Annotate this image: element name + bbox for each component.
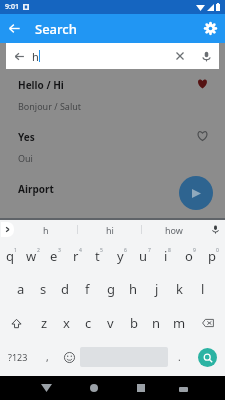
staticText: Oui — [18, 152, 33, 164]
staticText: e — [50, 247, 58, 265]
staticText: Bonjour / Salut — [18, 100, 82, 112]
button[interactable]: ?123 — [0, 340, 36, 374]
staticText: Yes — [18, 130, 35, 144]
staticText: . — [178, 350, 181, 364]
staticText: 5 — [100, 247, 103, 254]
button[interactable]: p — [202, 239, 225, 272]
staticText: Hello / Hi — [18, 78, 64, 92]
button[interactable]: o — [179, 239, 202, 272]
button[interactable]: Search — [198, 348, 217, 367]
staticText: 4 — [79, 247, 82, 254]
button[interactable]: Add favourite — [195, 128, 209, 142]
button[interactable]: Backspace — [191, 306, 225, 340]
button[interactable]: Back — [0, 14, 29, 43]
button[interactable]: x — [55, 306, 77, 340]
button[interactable]: z — [33, 306, 55, 340]
staticText: how — [165, 224, 183, 236]
button[interactable]: , — [36, 340, 58, 374]
staticText: 9 — [193, 247, 196, 254]
button[interactable]: Airport — [8, 175, 217, 203]
button[interactable]: Close search — [6, 43, 32, 69]
button[interactable]: a — [10, 272, 32, 306]
staticText: 6 — [124, 247, 127, 254]
staticText: h — [129, 280, 138, 298]
staticText: s — [40, 280, 47, 298]
button[interactable]: j — [145, 272, 168, 306]
staticText: k — [176, 280, 183, 298]
button[interactable]: Home — [70, 376, 117, 400]
button[interactable]: w — [22, 239, 44, 272]
staticText: ?123 — [8, 351, 28, 363]
button[interactable]: hi — [78, 220, 141, 239]
button[interactable]: b — [122, 306, 145, 340]
staticText: f — [85, 280, 90, 298]
button[interactable]: d — [54, 272, 76, 306]
staticText: , — [46, 350, 49, 364]
staticText: 7 — [148, 247, 151, 254]
button[interactable]: Expand suggestions — [1, 222, 14, 237]
staticText: t — [95, 247, 100, 265]
staticText: 0 — [216, 247, 219, 254]
staticText: a — [17, 280, 25, 298]
staticText: 3 — [58, 247, 61, 254]
button[interactable]: Back — [23, 376, 70, 400]
staticText: b — [130, 314, 138, 332]
button[interactable]: how — [142, 220, 205, 239]
staticText: 8 — [168, 247, 171, 254]
button[interactable]: c — [77, 306, 99, 340]
button[interactable]: Voice search — [193, 43, 219, 69]
staticText: 9:01 — [5, 2, 19, 12]
button[interactable]: Hello / Hi — [8, 71, 217, 119]
staticText: q — [6, 247, 14, 265]
button[interactable]: Close search — [6, 43, 219, 69]
staticText: n — [152, 314, 161, 332]
staticText: z — [41, 314, 48, 332]
staticText: c — [85, 314, 92, 332]
button[interactable]: l — [191, 272, 214, 306]
button[interactable]: s — [32, 272, 54, 306]
button[interactable]: Play — [179, 176, 213, 210]
button[interactable]: m — [168, 306, 191, 340]
staticText: i — [164, 247, 168, 265]
button[interactable]: n — [145, 306, 168, 340]
button[interactable]: Voice input — [205, 220, 225, 239]
staticText: 1 — [14, 247, 17, 254]
staticText: j — [155, 280, 159, 298]
staticText: hi — [106, 224, 114, 236]
staticText: o — [185, 247, 193, 265]
button[interactable]: q — [0, 239, 22, 272]
staticText: u — [139, 247, 148, 265]
button[interactable]: r — [66, 239, 88, 272]
button[interactable]: y — [110, 239, 133, 272]
button[interactable]: Clear — [167, 43, 193, 69]
button[interactable]: t — [88, 239, 110, 272]
button[interactable]: Switch keyboard — [164, 376, 202, 400]
staticText: v — [107, 314, 114, 332]
button[interactable]: e — [44, 239, 66, 272]
staticText: 2 — [37, 247, 40, 254]
button[interactable]: i — [156, 239, 179, 272]
staticText: p — [208, 247, 216, 265]
button[interactable]: v — [99, 306, 122, 340]
button[interactable]: k — [168, 272, 191, 306]
button[interactable]: Remove favourite — [195, 76, 209, 90]
button[interactable]: f — [76, 272, 99, 306]
staticText: y — [117, 247, 124, 265]
button[interactable]: Emoji — [58, 340, 80, 374]
staticText: m — [173, 314, 186, 332]
staticText: x — [63, 314, 70, 332]
staticText: Search — [35, 20, 77, 38]
staticText: w — [26, 247, 37, 265]
staticText: h — [32, 49, 39, 64]
button[interactable]: g — [99, 272, 122, 306]
button[interactable]: h — [122, 272, 145, 306]
button[interactable]: Yes — [8, 123, 217, 171]
button[interactable]: Recents — [117, 376, 164, 400]
button[interactable]: h — [14, 220, 77, 239]
button[interactable]: Shift — [0, 306, 33, 340]
button[interactable]: Settings — [196, 14, 225, 43]
button[interactable]: u — [133, 239, 156, 272]
staticText: l — [201, 280, 205, 298]
button[interactable]: . — [168, 340, 190, 374]
